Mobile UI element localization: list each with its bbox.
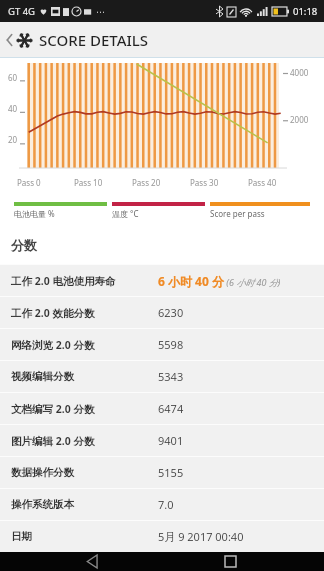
staticText: 分数 <box>11 237 37 253</box>
staticText: Pass 20 <box>132 177 161 188</box>
staticText: SCORE DETAILS <box>39 30 149 50</box>
staticText: Pass 10 <box>74 177 103 188</box>
staticText: Score per pass <box>210 208 265 219</box>
staticText: 20 <box>8 134 18 145</box>
staticText: 数据操作分数 <box>11 466 74 479</box>
staticText: 9401 <box>158 433 184 448</box>
staticText: ⋯ <box>96 7 105 17</box>
button[interactable]: Home <box>210 552 250 571</box>
button[interactable]: 日期 <box>0 521 324 552</box>
staticText: Pass 40 <box>248 177 277 188</box>
button[interactable]: 工作 2.0 电池使用寿命 <box>0 265 324 296</box>
button[interactable]: Back <box>72 552 112 571</box>
staticText: 日期 <box>11 530 32 543</box>
staticText: 6230 <box>158 305 184 320</box>
staticText: 5598 <box>158 337 184 352</box>
staticText: 7.0 <box>158 497 174 512</box>
staticText: 工作 2.0 效能分数 <box>11 306 95 320</box>
staticText: 4000 <box>290 67 309 78</box>
staticText: 图片编辑 2.0 分数 <box>11 434 95 448</box>
staticText: 操作系统版本 <box>11 498 74 511</box>
staticText: 工作 2.0 电池使用寿命 <box>11 274 116 288</box>
staticText: 5343 <box>158 369 184 384</box>
staticText: 电池电量 % <box>14 208 55 219</box>
staticText: Pass 0 <box>17 177 41 188</box>
button[interactable]: 工作 2.0 效能分数 <box>0 297 324 328</box>
staticText: 温度 °C <box>112 208 139 219</box>
button[interactable]: 操作系统版本 <box>0 489 324 520</box>
staticText: 2000 <box>290 114 309 125</box>
button[interactable]: 网络浏览 2.0 分数 <box>0 329 324 360</box>
staticText: 5155 <box>158 465 184 480</box>
staticText: Pass 30 <box>190 177 219 188</box>
staticText: 01:18 <box>293 5 318 18</box>
button[interactable]: 视频编辑分数 <box>0 361 324 392</box>
button[interactable]: 图片编辑 2.0 分数 <box>0 425 324 456</box>
staticText: 6 小时 40 分 (6 小时 40 分) <box>158 273 281 289</box>
button[interactable]: 数据操作分数 <box>0 457 324 488</box>
button[interactable]: Back <box>5 30 149 50</box>
staticText: 6474 <box>158 401 184 416</box>
staticText: 视频编辑分数 <box>11 370 74 383</box>
staticText: 40 <box>8 103 18 114</box>
staticText: 文档编写 2.0 分数 <box>11 402 95 416</box>
staticText: 5月 9 2017 00:40 <box>158 529 244 544</box>
staticText: GT 4G <box>8 5 36 18</box>
button[interactable]: 文档编写 2.0 分数 <box>0 393 324 424</box>
staticText: 60 <box>8 72 18 83</box>
staticText: 网络浏览 2.0 分数 <box>11 338 95 352</box>
